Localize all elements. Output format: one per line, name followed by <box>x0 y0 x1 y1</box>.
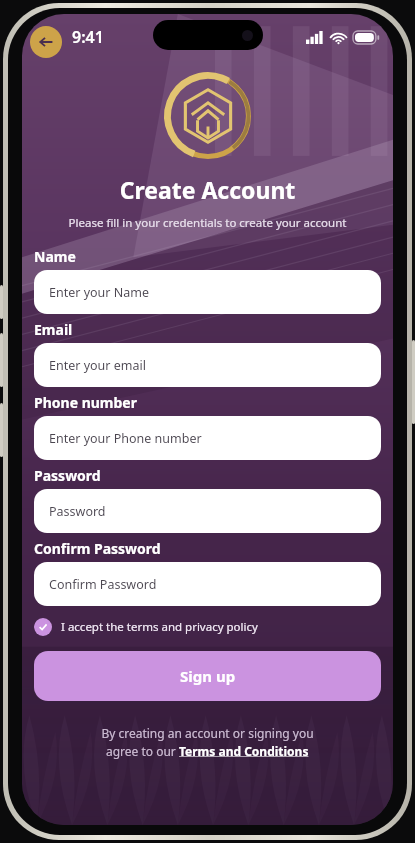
button[interactable]: Terms and Conditions <box>179 743 309 759</box>
staticText: 9:41 <box>72 26 104 48</box>
staticText: Confirm Password <box>49 576 157 593</box>
staticText: Name <box>34 247 76 266</box>
staticText: Enter your email <box>49 357 146 374</box>
button[interactable]: Enter your Name <box>34 270 381 314</box>
button[interactable]: I accept the terms and privacy policy <box>34 616 258 638</box>
staticText: agree to our <box>106 743 179 759</box>
staticText: Phone number <box>34 393 137 412</box>
staticText: Please fill in your credentials to creat… <box>30 215 385 231</box>
button[interactable]: Enter your email <box>34 343 381 387</box>
staticText: By creating an account or signing you <box>46 725 369 741</box>
staticText: Create Account <box>22 174 393 205</box>
staticText: Enter your Name <box>49 284 149 301</box>
button[interactable]: Confirm Password <box>34 562 381 606</box>
button[interactable]: Sign up <box>34 651 381 701</box>
button[interactable]: Password <box>34 489 381 533</box>
staticText: Sign up <box>180 666 236 686</box>
staticText: I accept the terms and privacy policy <box>61 619 258 635</box>
button[interactable]: Back <box>30 26 62 58</box>
staticText: Confirm Password <box>34 539 161 558</box>
button[interactable]: Enter your Phone number <box>34 416 381 460</box>
staticText: Email <box>34 320 73 339</box>
staticText: Terms and Conditions <box>179 743 309 759</box>
staticText: Enter your Phone number <box>49 430 202 447</box>
staticText: Password <box>34 466 101 485</box>
staticText: Password <box>49 503 106 520</box>
